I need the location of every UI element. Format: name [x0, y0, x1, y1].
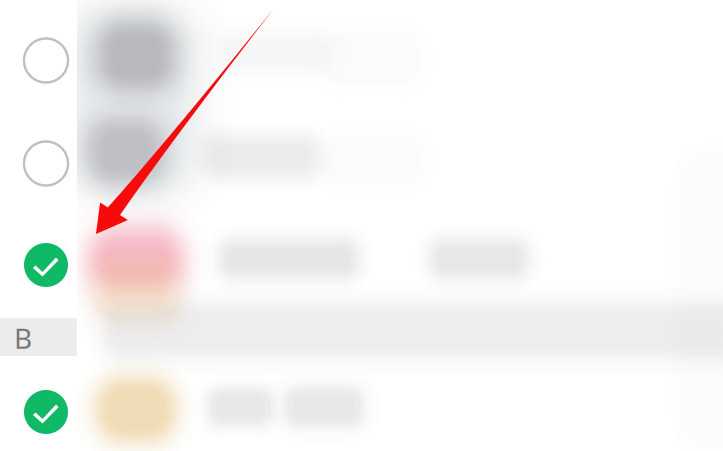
staticText: B	[14, 319, 32, 357]
button[interactable]: Contact selected	[7, 217, 84, 313]
button[interactable]: Select contact	[7, 115, 84, 211]
button[interactable]: Select contact	[7, 12, 84, 108]
button[interactable]: Contact selected	[7, 364, 84, 451]
